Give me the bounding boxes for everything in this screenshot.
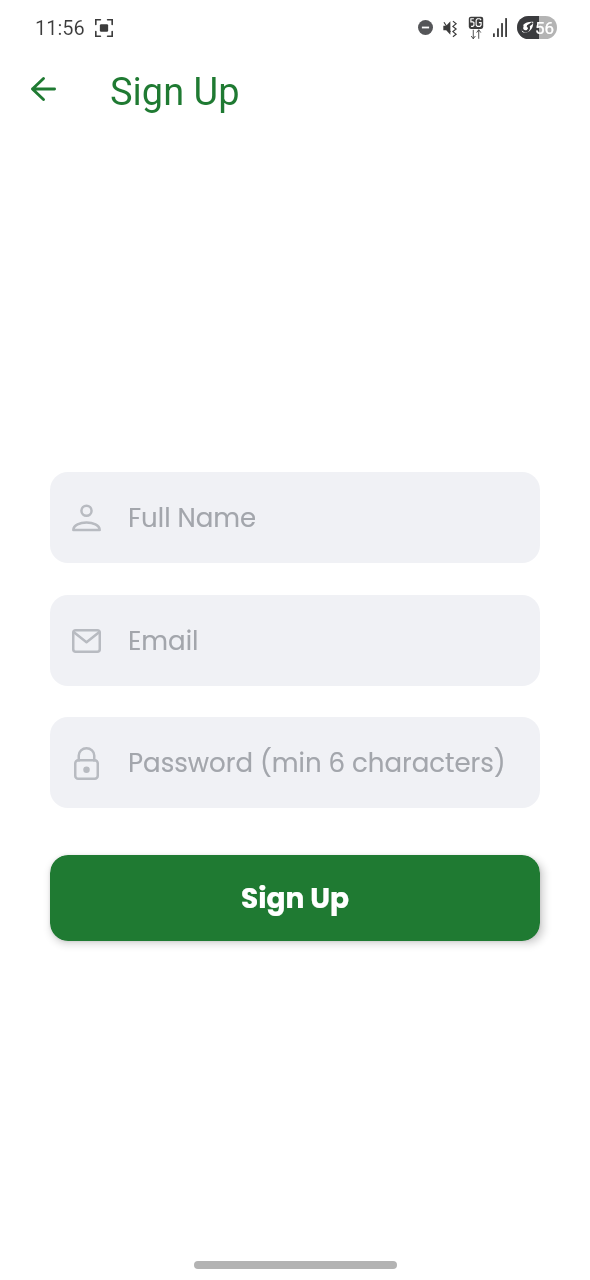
button[interactable]: Sign Up <box>50 855 540 941</box>
button[interactable]: Email <box>50 595 540 686</box>
staticText: 56 <box>535 18 555 38</box>
staticText: Full Name <box>128 500 257 536</box>
staticText: Email <box>128 623 199 659</box>
staticText: 11:56 <box>35 16 85 39</box>
button[interactable]: Back <box>21 67 65 111</box>
button[interactable]: Full Name <box>50 472 540 563</box>
staticText: Password (min 6 characters) <box>128 745 506 781</box>
staticText: Sign Up <box>110 70 240 115</box>
staticText: Sign Up <box>241 879 350 918</box>
button[interactable]: Password (min 6 characters) <box>50 717 540 808</box>
